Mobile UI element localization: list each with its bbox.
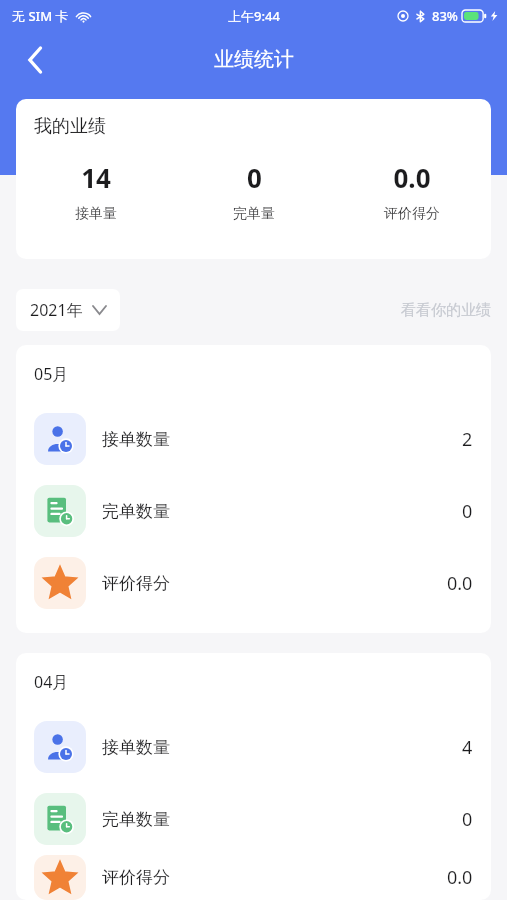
staticText: 0: [462, 807, 473, 832]
staticText: 0.0: [447, 865, 473, 890]
staticText: 完单量: [233, 205, 275, 223]
staticText: 上午9:44: [228, 7, 280, 25]
staticText: 无 SIM 卡: [12, 7, 69, 25]
staticText: 2021年: [30, 299, 83, 321]
button[interactable]: 评价得分: [16, 547, 491, 619]
staticText: 看看你的业绩: [401, 301, 491, 320]
staticText: 04月: [34, 671, 69, 693]
staticText: 完单数量: [102, 501, 170, 522]
staticText: 评价得分: [102, 573, 170, 594]
button[interactable]: 评价得分: [16, 855, 491, 900]
staticText: 2: [462, 427, 473, 452]
staticText: 05月: [34, 363, 69, 385]
staticText: 我的业绩: [34, 115, 106, 138]
staticText: 完单数量: [102, 809, 170, 830]
staticText: 接单数量: [102, 429, 170, 450]
staticText: 0.0: [393, 160, 431, 195]
staticText: 接单量: [75, 205, 117, 223]
button[interactable]: 接单数量: [16, 403, 491, 475]
button[interactable]: 完单数量: [16, 783, 491, 855]
staticText: 83%: [432, 7, 458, 25]
button[interactable]: 2021年: [16, 289, 120, 331]
button[interactable]: 返回: [14, 38, 58, 82]
staticText: 0: [462, 499, 473, 524]
staticText: 0.0: [447, 571, 473, 596]
staticText: 业绩统计: [214, 47, 294, 72]
button[interactable]: 我的业绩: [16, 99, 491, 259]
staticText: 接单数量: [102, 737, 170, 758]
staticText: 4: [462, 735, 473, 760]
staticText: 评价得分: [102, 867, 170, 888]
button[interactable]: 完单数量: [16, 475, 491, 547]
staticText: 14: [81, 160, 111, 195]
staticText: 评价得分: [384, 205, 440, 223]
button[interactable]: 接单数量: [16, 711, 491, 783]
staticText: 0: [247, 160, 262, 195]
